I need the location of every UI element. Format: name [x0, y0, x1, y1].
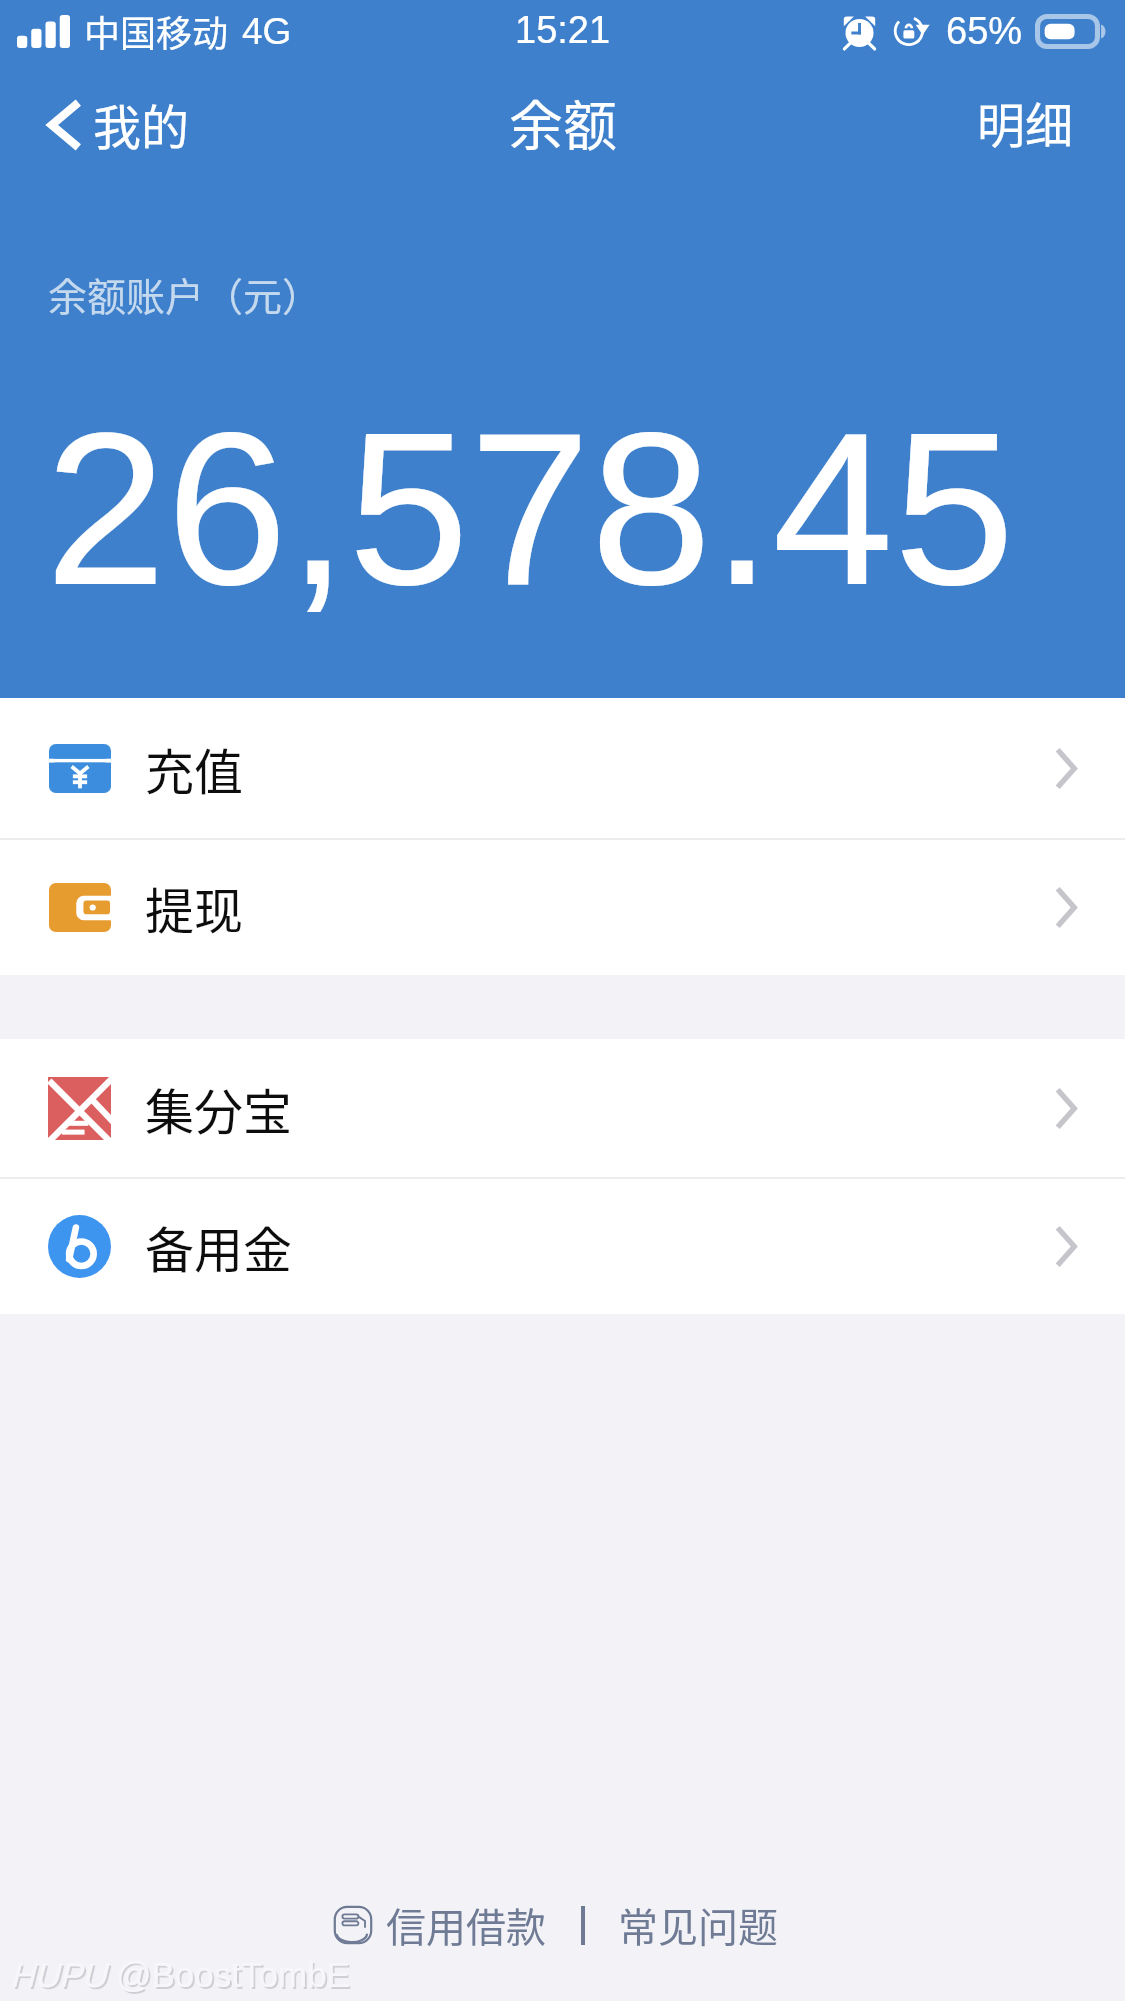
staticText: 提现 — [145, 872, 244, 943]
staticText: 4G — [242, 11, 292, 52]
staticText: 26,578.45 — [45, 387, 1015, 631]
staticText: 充值 — [145, 733, 244, 804]
other: 信用借款 — [333, 1905, 373, 1945]
staticText: 我的 — [93, 89, 190, 159]
button[interactable]: 提现 — [0, 840, 1125, 975]
staticText: 余额 — [509, 83, 617, 161]
staticText: 余额账户（元） — [48, 266, 322, 322]
button[interactable]: 充值 — [0, 698, 1125, 838]
staticText: 15:21 — [515, 9, 611, 51]
staticText: 备用金 — [145, 1211, 293, 1282]
button[interactable]: 信用借款 — [333, 1890, 546, 1960]
button[interactable]: 备用金 — [0, 1179, 1125, 1314]
staticText: 信用借款 — [386, 1896, 546, 1954]
staticText: 65% — [946, 10, 1023, 52]
staticText: @BoostTombE — [116, 1955, 350, 1994]
staticText: 中国移动 — [84, 5, 229, 57]
other: 返回 — [48, 99, 82, 151]
button[interactable]: 返回 — [0, 79, 216, 169]
other: 更多 — [1055, 886, 1077, 929]
staticText: 集分宝 — [145, 1073, 293, 1144]
button[interactable]: 明细 — [935, 77, 1125, 167]
button[interactable]: 常见问题 — [618, 1890, 778, 1960]
button[interactable]: 集分宝 — [0, 1039, 1125, 1177]
other: 更多 — [1055, 1225, 1077, 1268]
other: 更多 — [1055, 1087, 1077, 1130]
staticText: HUPU — [12, 1958, 109, 1996]
staticText: HUPU — [10, 1956, 107, 1994]
other: 更多 — [1055, 747, 1077, 790]
staticText: @BoostTombE — [118, 1957, 352, 1996]
